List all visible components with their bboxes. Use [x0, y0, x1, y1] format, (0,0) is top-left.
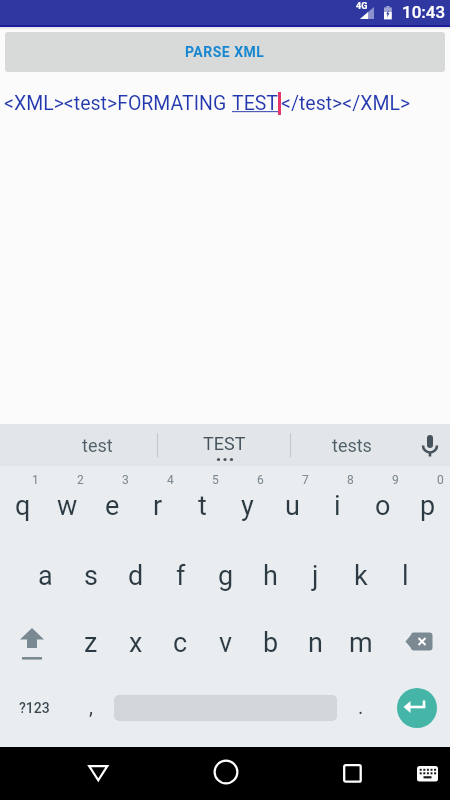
staticText: 9 — [392, 473, 399, 487]
button[interactable] — [0, 607, 68, 677]
staticText: x — [129, 627, 143, 659]
button[interactable]: g — [203, 537, 248, 607]
button[interactable]: 4 — [135, 466, 180, 537]
button[interactable] — [343, 764, 362, 783]
staticText: . — [358, 695, 364, 718]
staticText: 6 — [257, 473, 264, 487]
staticText: r — [153, 490, 163, 522]
button[interactable]: h — [248, 537, 293, 607]
staticText: e — [105, 490, 120, 522]
staticText: y — [241, 490, 254, 522]
button[interactable]: b — [248, 607, 293, 677]
button[interactable] — [383, 677, 450, 747]
staticText: TEST — [203, 433, 246, 454]
staticText: q — [15, 490, 31, 522]
button[interactable]: z — [68, 607, 113, 677]
staticText: 7 — [302, 473, 309, 487]
staticText: 10:43 — [402, 2, 446, 22]
button[interactable]: m — [338, 607, 383, 677]
staticText: w — [57, 490, 78, 522]
staticText: TEST — [232, 92, 278, 115]
button[interactable]: v — [203, 607, 248, 677]
staticText: 8 — [347, 473, 354, 487]
staticText: t — [198, 490, 207, 522]
button[interactable]: tests — [292, 424, 412, 466]
button[interactable]: x — [113, 607, 158, 677]
button[interactable] — [383, 607, 450, 677]
button[interactable]: n — [293, 607, 338, 677]
staticText: o — [375, 490, 391, 522]
button[interactable]: 2 — [45, 466, 90, 537]
staticText: c — [173, 627, 188, 659]
staticText: g — [218, 560, 234, 592]
staticText: <XML><test>FORMATING — [4, 92, 232, 115]
button[interactable]: ?123 — [0, 677, 68, 747]
staticText: 5 — [212, 473, 219, 487]
staticText: 4G — [356, 1, 368, 12]
button[interactable] — [88, 765, 109, 782]
staticText: j — [312, 560, 319, 592]
button[interactable]: PARSE XML — [5, 32, 445, 72]
button[interactable]: a — [23, 537, 68, 607]
staticText: 4 — [167, 473, 174, 487]
button[interactable]: 3 — [90, 466, 135, 537]
staticText: tests — [332, 435, 372, 456]
staticText: 1 — [32, 473, 39, 487]
staticText: u — [285, 490, 300, 522]
staticText: 0 — [437, 473, 444, 487]
staticText: z — [84, 627, 98, 659]
button[interactable]: d — [113, 537, 158, 607]
button[interactable]: k — [338, 537, 383, 607]
button[interactable]: f — [158, 537, 203, 607]
button[interactable] — [419, 434, 441, 458]
button[interactable]: 8 — [315, 466, 360, 537]
button[interactable]: 9 — [360, 466, 405, 537]
staticText: m — [349, 627, 373, 659]
staticText: k — [354, 560, 368, 592]
staticText: , — [89, 695, 93, 718]
button[interactable]: 5 — [180, 466, 225, 537]
button[interactable]: . — [338, 677, 383, 747]
staticText: l — [402, 560, 409, 592]
staticText: p — [420, 490, 436, 522]
staticText: PARSE XML — [185, 44, 265, 60]
button[interactable] — [213, 759, 239, 785]
staticText: 3 — [122, 473, 129, 487]
button[interactable]: 7 — [270, 466, 315, 537]
staticText: s — [84, 560, 98, 592]
button[interactable]: 1 — [0, 466, 45, 537]
button[interactable]: l — [383, 537, 428, 607]
button[interactable] — [113, 677, 338, 747]
button[interactable]: 0 — [405, 466, 450, 537]
staticText: n — [308, 627, 323, 659]
staticText: f — [176, 560, 186, 592]
staticText: d — [128, 560, 144, 592]
button[interactable]: j — [293, 537, 338, 607]
staticText: i — [334, 490, 341, 522]
staticText: </test></XML> — [281, 92, 411, 115]
staticText: test — [82, 435, 113, 456]
button[interactable]: 6 — [225, 466, 270, 537]
button[interactable]: c — [158, 607, 203, 677]
button[interactable]: s — [68, 537, 113, 607]
staticText: b — [263, 627, 279, 659]
button[interactable] — [417, 766, 438, 782]
staticText: ?123 — [19, 700, 50, 716]
staticText: h — [263, 560, 278, 592]
staticText: v — [219, 627, 233, 659]
button[interactable]: test — [37, 424, 157, 466]
button[interactable]: , — [68, 677, 113, 747]
staticText: a — [38, 560, 53, 592]
button[interactable]: TEST — [164, 424, 284, 466]
staticText: 2 — [77, 473, 84, 487]
